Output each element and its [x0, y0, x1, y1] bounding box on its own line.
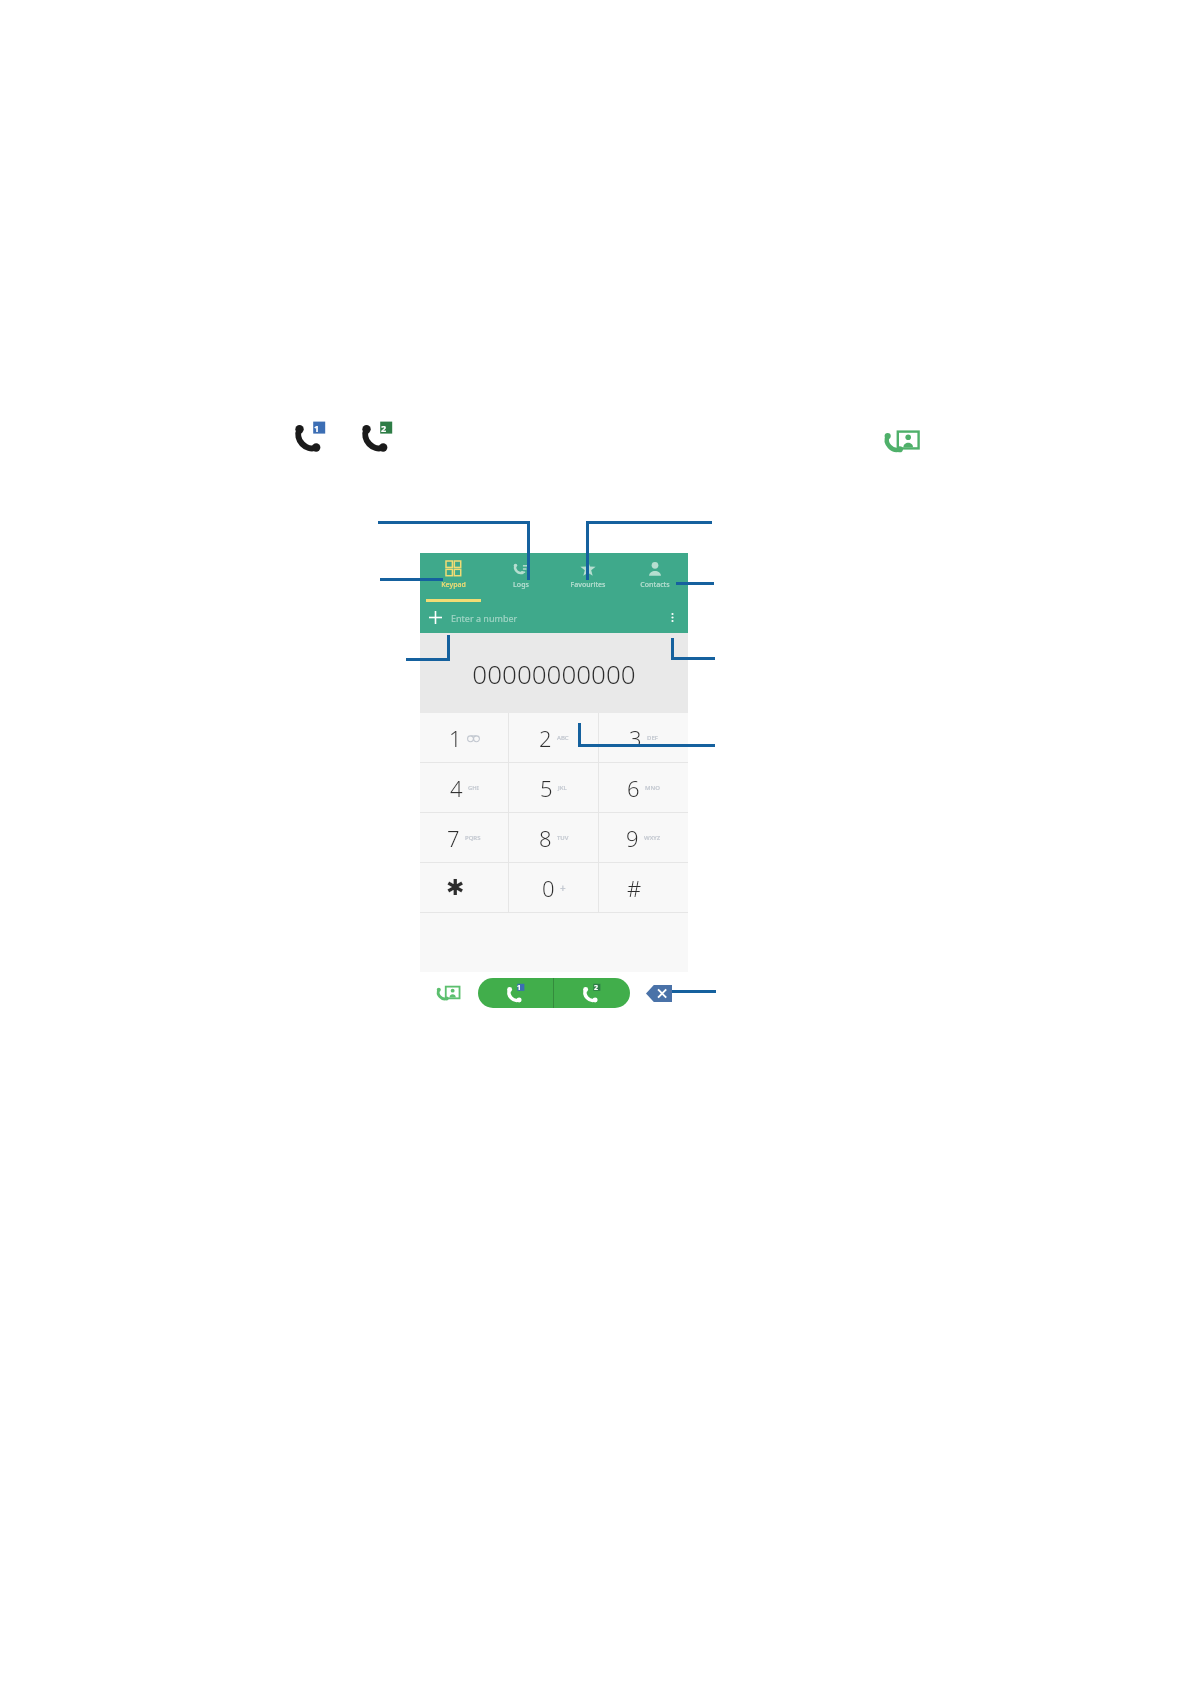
staticText: PQRS — [465, 834, 481, 842]
staticText: ABC — [557, 734, 569, 742]
staticText: 5 — [540, 773, 553, 803]
staticText: MNO — [645, 784, 660, 792]
staticText: 6 — [627, 773, 640, 803]
button[interactable]: Key 5 — [509, 763, 598, 812]
staticText: 8 — [539, 823, 552, 853]
button[interactable]: Logs — [487, 553, 554, 599]
staticText: Favourites — [570, 580, 606, 590]
button[interactable]: Key 3 — [599, 713, 688, 762]
staticText: TUV — [557, 834, 569, 842]
staticText: 3 — [629, 723, 642, 753]
staticText: JKL — [558, 784, 567, 792]
button[interactable]: Key 0 — [509, 863, 598, 912]
staticText: 4 — [450, 773, 463, 803]
staticText: 00000000000 — [472, 656, 636, 691]
button[interactable]: Backspace — [630, 972, 688, 1014]
staticText: 0 — [542, 873, 555, 903]
staticText: 2 — [381, 422, 387, 434]
staticText: 1 — [517, 983, 522, 993]
button[interactable]: Key 2 — [509, 713, 598, 762]
staticText: GHI — [468, 784, 479, 792]
button[interactable]: Keypad — [420, 553, 487, 599]
button[interactable]: Key # — [599, 863, 688, 912]
staticText: ✱ — [446, 875, 465, 901]
staticText: 2 — [539, 723, 552, 753]
staticText: DEF — [647, 734, 658, 742]
button[interactable]: Key 7 — [420, 813, 508, 862]
button[interactable]: Call with SIM 2 — [554, 978, 630, 1008]
button[interactable]: Call with SIM 1 — [478, 978, 553, 1008]
staticText: 1 — [449, 723, 462, 753]
button[interactable]: Video call — [883, 420, 923, 460]
staticText: 1 — [314, 422, 320, 434]
button[interactable]: Key 4 — [420, 763, 508, 812]
staticText: Enter a number — [451, 612, 518, 624]
staticText: WXYZ — [644, 834, 661, 842]
staticText: # — [627, 873, 642, 903]
button[interactable]: Key 6 — [599, 763, 688, 812]
button[interactable]: Video call — [420, 972, 478, 1014]
staticText: 9 — [626, 823, 639, 853]
button[interactable]: Key 9 — [599, 813, 688, 862]
button[interactable]: Contacts — [621, 553, 688, 599]
button[interactable]: Key 1 — [420, 713, 508, 762]
button[interactable]: Call with SIM 1 — [290, 416, 330, 456]
staticText: 7 — [447, 823, 460, 853]
button[interactable]: Key 8 — [509, 813, 598, 862]
button[interactable]: Add contact — [420, 602, 451, 633]
button[interactable]: Call with SIM 2 — [357, 416, 397, 456]
staticText: 2 — [594, 983, 599, 993]
button[interactable]: Key ✱ — [420, 863, 508, 912]
staticText: Keypad — [441, 580, 466, 590]
staticText: Logs — [513, 580, 529, 590]
button[interactable]: Favourites — [554, 553, 621, 599]
button[interactable]: More options — [657, 602, 688, 633]
staticText: + — [560, 881, 566, 895]
staticText: Contacts — [640, 580, 670, 590]
